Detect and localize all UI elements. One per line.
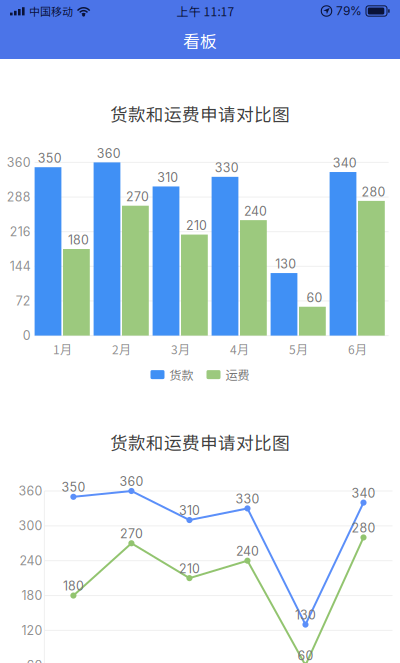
staticText: 360: [7, 155, 31, 170]
button[interactable]: 看板: [0, 22, 400, 59]
staticText: 4月: [230, 340, 249, 358]
staticText: 240: [244, 204, 267, 219]
staticText: 180: [21, 588, 42, 603]
staticText: 看板: [183, 28, 217, 53]
staticText: 货款和运费申请对比图: [110, 101, 290, 126]
staticText: 280: [362, 184, 386, 199]
staticText: 180: [68, 232, 89, 247]
staticText: 60: [297, 648, 313, 663]
staticText: 0: [23, 328, 31, 343]
staticText: 2月: [112, 340, 131, 358]
staticText: 180: [63, 578, 84, 593]
staticText: 运费: [225, 366, 249, 383]
staticText: 上午 11:17: [176, 2, 234, 20]
staticText: 60: [307, 290, 323, 305]
staticText: 350: [61, 480, 85, 495]
staticText: 280: [351, 520, 375, 535]
staticText: 240: [19, 553, 42, 568]
staticText: 270: [120, 526, 143, 541]
staticText: 6月: [348, 340, 367, 358]
staticText: 130: [295, 608, 316, 623]
staticText: 60: [26, 658, 42, 663]
staticText: 300: [18, 518, 42, 533]
staticText: 270: [126, 189, 149, 204]
staticText: 340: [351, 486, 375, 501]
staticText: 360: [18, 483, 42, 498]
staticText: 130: [275, 257, 296, 272]
staticText: 330: [235, 491, 259, 506]
staticText: 350: [38, 151, 62, 166]
staticText: 5月: [289, 340, 308, 358]
staticText: 360: [97, 146, 121, 161]
staticText: 3月: [171, 340, 190, 358]
staticText: 310: [157, 170, 178, 185]
staticText: 中国移动: [29, 3, 73, 19]
staticText: 144: [10, 259, 31, 274]
staticText: 210: [179, 561, 200, 576]
staticText: 79%: [336, 4, 362, 18]
staticText: 240: [236, 544, 259, 559]
staticText: 360: [119, 474, 143, 489]
staticText: 310: [179, 503, 200, 518]
staticText: 1月: [53, 340, 72, 358]
staticText: 72: [16, 293, 31, 308]
staticText: 330: [215, 160, 239, 175]
staticText: 216: [10, 224, 31, 239]
staticText: 340: [333, 155, 357, 170]
staticText: 货款和运费申请对比图: [110, 429, 290, 455]
staticText: 210: [186, 218, 207, 233]
staticText: 120: [21, 623, 42, 638]
staticText: 288: [7, 189, 31, 204]
staticText: 货款: [169, 366, 193, 383]
